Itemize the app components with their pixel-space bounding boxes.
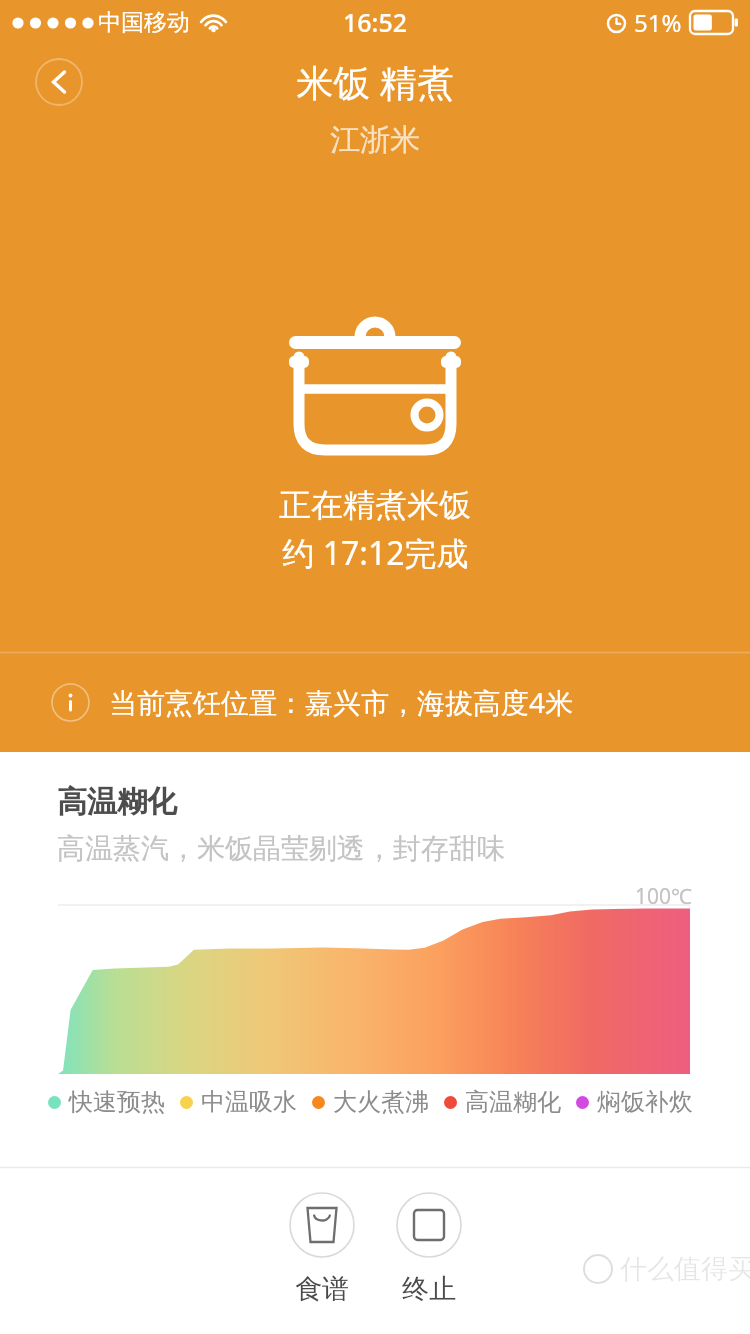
staticText: 高温蒸汽，米饭晶莹剔透，封存甜味 [57,831,505,866]
staticText: 食谱 [295,1272,349,1306]
button[interactable]: 当前烹饪位置：嘉兴市，海拔高度4米 [0,652,750,752]
staticText: 约 17:12完成 [282,531,469,575]
button[interactable]: 终止 [375,1192,482,1306]
staticText: 100℃ [635,882,692,911]
staticText: 江浙米 [330,121,420,159]
staticText: 16:52 [343,5,408,39]
staticText: 米饭 精煮 [296,56,454,107]
staticText: 正在精煮米饭 [279,485,471,525]
staticText: 中国移动 [98,8,190,37]
staticText: 快速预热 [69,1087,165,1117]
staticText: 51% [634,6,682,39]
staticText: 高温糊化 [465,1087,561,1117]
button[interactable]: Back [35,58,83,106]
staticText: 终止 [402,1272,456,1306]
staticText: 高温糊化 [57,783,177,821]
staticText: 大火煮沸 [333,1087,429,1117]
staticText: 焖饭补炊 [597,1087,693,1117]
staticText: 中温吸水 [201,1087,297,1117]
staticText: 什么值得买 [620,1252,750,1286]
staticText: 当前烹饪位置：嘉兴市，海拔高度4米 [109,683,574,721]
button[interactable]: 食谱 [268,1192,375,1306]
